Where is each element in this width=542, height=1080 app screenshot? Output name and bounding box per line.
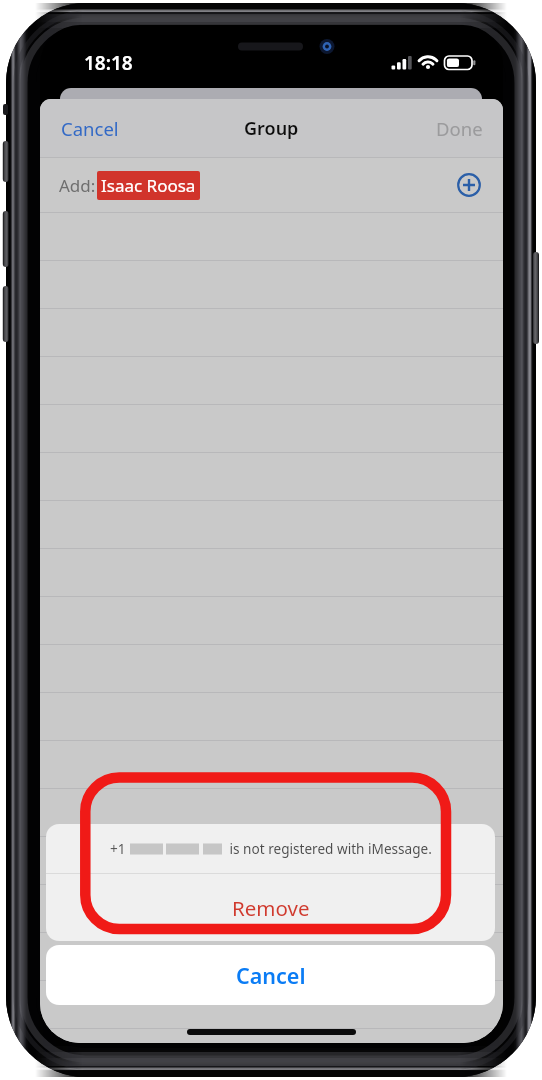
staticText: 18:18	[84, 50, 133, 76]
staticText: Isaac Roosa	[101, 174, 196, 197]
staticText: is not registered with iMessage.	[226, 839, 432, 858]
button[interactable]: Done	[416, 106, 503, 151]
staticText: Cancel	[61, 116, 119, 141]
staticText: Cancel	[236, 961, 306, 990]
button[interactable]: Isaac Roosa	[97, 171, 200, 200]
staticText: Group	[244, 116, 299, 141]
staticText: +1	[110, 839, 130, 858]
button[interactable]: Remove	[46, 874, 495, 941]
staticText: Add:	[59, 174, 96, 197]
staticText: Done	[436, 116, 483, 141]
staticText: Remove	[232, 894, 310, 922]
button[interactable]: Cancel	[40, 106, 140, 151]
button[interactable]: Cancel	[46, 945, 495, 1005]
button[interactable]: Add contact	[457, 173, 481, 197]
